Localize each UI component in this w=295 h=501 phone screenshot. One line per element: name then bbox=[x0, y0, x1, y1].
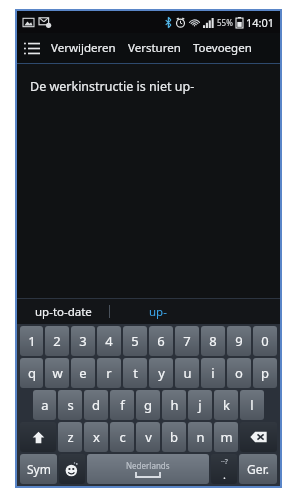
staticText: w bbox=[52, 364, 63, 382]
staticText: k bbox=[223, 396, 230, 414]
staticText: ··? bbox=[221, 457, 228, 467]
staticText: h bbox=[170, 396, 179, 414]
staticText: 2 bbox=[53, 332, 61, 350]
button[interactable]: Menu bbox=[17, 33, 47, 63]
button[interactable]: Key bbox=[20, 422, 56, 452]
staticText: 8 bbox=[209, 332, 217, 350]
button[interactable]: Key bbox=[240, 422, 277, 452]
staticText: p bbox=[261, 364, 269, 382]
button[interactable]: y bbox=[149, 358, 173, 388]
staticText: s bbox=[67, 396, 74, 414]
button[interactable]: m bbox=[214, 422, 238, 452]
button[interactable]: Verwijderen bbox=[47, 33, 120, 63]
button[interactable]: 4 bbox=[97, 326, 121, 356]
button[interactable]: f bbox=[110, 390, 134, 420]
button[interactable]: x bbox=[84, 422, 108, 452]
button[interactable]: v bbox=[136, 422, 160, 452]
button[interactable]: i bbox=[201, 358, 225, 388]
button[interactable]: Key bbox=[87, 454, 209, 484]
button[interactable]: 7 bbox=[175, 326, 199, 356]
staticText: l bbox=[250, 396, 254, 414]
button[interactable]: w bbox=[45, 358, 69, 388]
button[interactable]: g bbox=[136, 390, 160, 420]
staticText: Nederlands bbox=[126, 460, 170, 471]
button[interactable]: l bbox=[240, 390, 264, 420]
button[interactable]: a bbox=[33, 390, 56, 420]
staticText: t bbox=[133, 364, 138, 382]
button[interactable]: 0 bbox=[253, 326, 277, 356]
staticText: b bbox=[170, 428, 178, 446]
staticText: j bbox=[198, 396, 202, 414]
other: Punctuation bbox=[211, 454, 237, 484]
staticText: f bbox=[120, 396, 125, 414]
button[interactable]: 9 bbox=[227, 326, 251, 356]
button[interactable]: s bbox=[58, 390, 82, 420]
button[interactable]: o bbox=[227, 358, 251, 388]
staticText: y bbox=[158, 364, 165, 382]
staticText: a bbox=[41, 396, 49, 414]
button[interactable]: Key bbox=[211, 454, 237, 484]
staticText: Sym bbox=[27, 461, 51, 477]
button[interactable]: d bbox=[84, 390, 108, 420]
staticText: Toevoegen bbox=[193, 40, 252, 56]
button[interactable]: Toevoegen bbox=[189, 33, 256, 63]
button[interactable]: z bbox=[58, 422, 82, 452]
staticText: u bbox=[183, 364, 192, 382]
button[interactable]: 8 bbox=[201, 326, 225, 356]
staticText: 3 bbox=[79, 332, 87, 350]
staticText: up- bbox=[149, 304, 167, 320]
button[interactable]: Versturen bbox=[124, 33, 185, 63]
staticText: De werkinstructie is niet up- bbox=[30, 78, 195, 95]
staticText: n bbox=[196, 428, 205, 446]
other: Shift bbox=[20, 422, 56, 452]
button[interactable]: r bbox=[97, 358, 121, 388]
staticText: 6 bbox=[157, 332, 165, 350]
other: Emoji bbox=[59, 454, 85, 484]
button[interactable]: 6 bbox=[149, 326, 173, 356]
staticText: 14:01 bbox=[246, 15, 275, 30]
button[interactable]: p bbox=[253, 358, 277, 388]
button[interactable]: c bbox=[110, 422, 134, 452]
staticText: m bbox=[220, 428, 233, 446]
staticText: Ger. bbox=[247, 461, 269, 477]
staticText: d bbox=[92, 396, 100, 414]
staticText: v bbox=[145, 428, 152, 446]
staticText: q bbox=[28, 364, 36, 382]
staticText: o bbox=[235, 364, 243, 382]
staticText: Versturen bbox=[128, 40, 181, 56]
staticText: 1 bbox=[28, 332, 36, 350]
button[interactable]: 3 bbox=[71, 326, 95, 356]
button[interactable]: b bbox=[162, 422, 186, 452]
button[interactable]: j bbox=[188, 390, 212, 420]
button[interactable]: Key bbox=[59, 454, 85, 484]
staticText: e bbox=[79, 364, 87, 382]
staticText: 5 bbox=[131, 332, 139, 350]
button[interactable]: e bbox=[71, 358, 95, 388]
button[interactable]: h bbox=[162, 390, 186, 420]
button[interactable]: up- bbox=[110, 299, 205, 324]
staticText: 9 bbox=[235, 332, 243, 350]
button[interactable]: 1 bbox=[20, 326, 43, 356]
button[interactable]: Sym bbox=[20, 454, 57, 484]
staticText: Verwijderen bbox=[51, 40, 116, 56]
button[interactable]: up-to-date bbox=[17, 299, 109, 324]
staticText: 55% bbox=[217, 17, 233, 28]
other: Backspace bbox=[240, 422, 277, 452]
staticText: c bbox=[119, 428, 126, 446]
staticText: r bbox=[106, 364, 112, 382]
staticText: g bbox=[144, 396, 152, 414]
button[interactable]: k bbox=[214, 390, 238, 420]
button[interactable]: n bbox=[188, 422, 212, 452]
staticText: x bbox=[93, 428, 100, 446]
button[interactable]: De werkinstructie is niet up- bbox=[17, 64, 280, 298]
button[interactable]: t bbox=[123, 358, 147, 388]
button[interactable]: 2 bbox=[45, 326, 69, 356]
button[interactable]: 5 bbox=[123, 326, 147, 356]
button[interactable]: q bbox=[20, 358, 43, 388]
staticText: . bbox=[223, 467, 226, 482]
button[interactable]: u bbox=[175, 358, 199, 388]
staticText: 4 bbox=[105, 332, 113, 350]
staticText: z bbox=[67, 428, 74, 446]
button[interactable]: Ger. bbox=[239, 454, 277, 484]
staticText: i bbox=[211, 364, 215, 382]
